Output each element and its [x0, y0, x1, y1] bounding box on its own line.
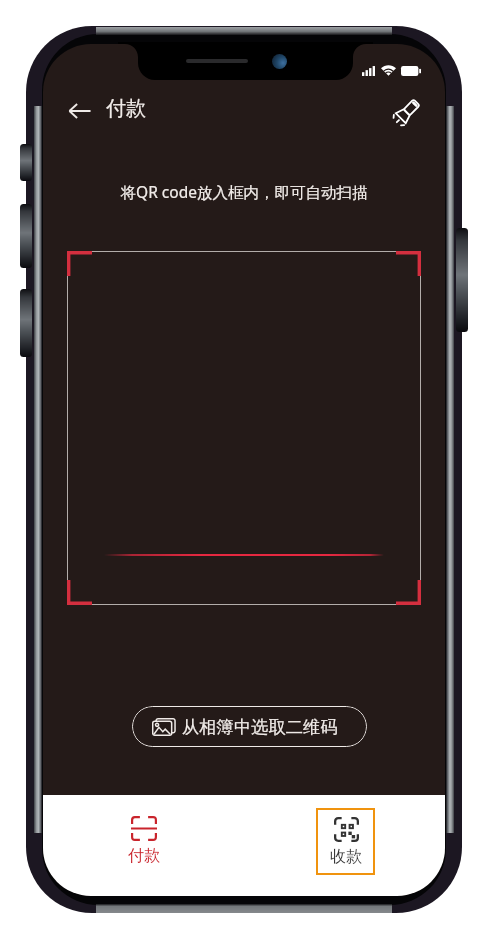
button[interactable]: Back [58, 89, 102, 133]
button[interactable]: 从相簿中选取二维码 [132, 706, 367, 747]
staticText: 将QR code放入框内，即可自动扫描 [43, 181, 445, 202]
button[interactable]: Flashlight [386, 89, 430, 133]
staticText: 收款 [330, 847, 362, 867]
button[interactable]: 收款 [316, 808, 375, 875]
staticText: 付款 [128, 846, 160, 866]
button[interactable]: 付款 [112, 816, 175, 866]
staticText: 付款 [106, 96, 146, 121]
staticText: 从相簿中选取二维码 [182, 716, 338, 738]
